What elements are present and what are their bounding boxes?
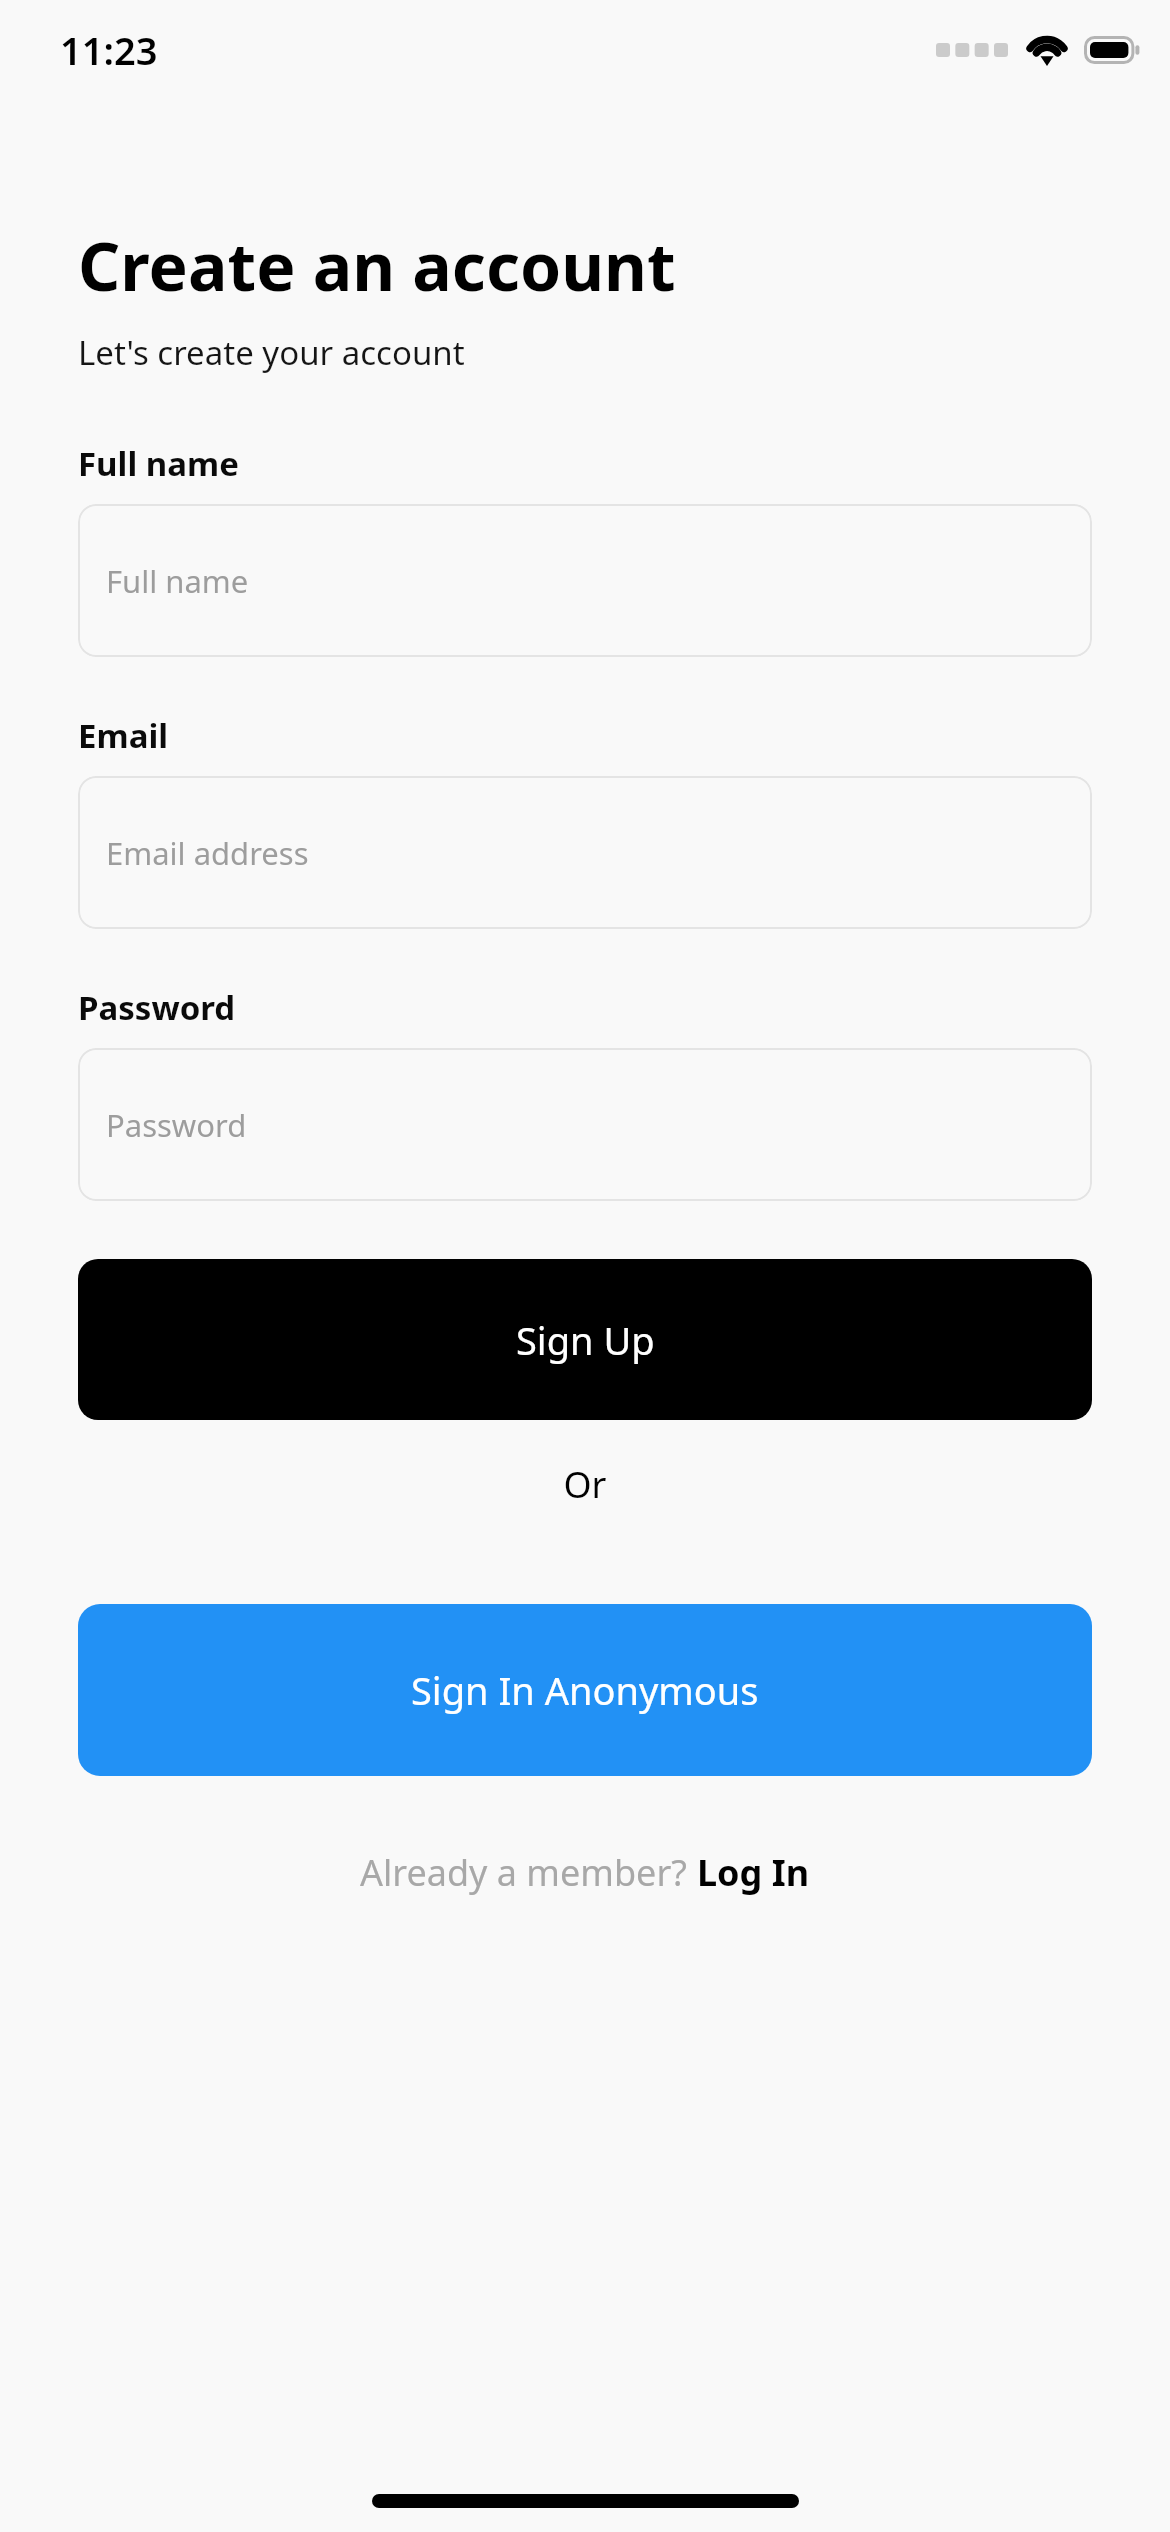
staticText: Sign Up — [516, 1314, 655, 1366]
staticText: Log In — [697, 1848, 810, 1897]
other: Wi-Fi — [1024, 33, 1070, 67]
button[interactable]: Email address — [78, 776, 1092, 929]
staticText: Password — [106, 1104, 247, 1146]
staticText: Email address — [106, 832, 309, 874]
button[interactable]: Password — [78, 1048, 1092, 1201]
staticText: Create an account — [78, 220, 676, 310]
button[interactable]: Full name — [78, 504, 1092, 657]
button[interactable]: Already a member? — [78, 1848, 1092, 1897]
staticText: 11:23 — [60, 24, 158, 76]
staticText: Already a member? — [360, 1848, 697, 1897]
other: Battery — [1084, 36, 1140, 64]
staticText: Password — [78, 985, 236, 1030]
staticText: Let's create your account — [78, 330, 465, 375]
button[interactable]: Sign In Anonymous — [78, 1604, 1092, 1776]
other: Cellular signal — [936, 43, 1008, 57]
staticText: Email — [78, 713, 169, 758]
button[interactable]: Sign Up — [78, 1259, 1092, 1420]
staticText: Full name — [78, 441, 239, 486]
staticText: Sign In Anonymous — [411, 1664, 759, 1716]
staticText: Full name — [106, 560, 249, 602]
staticText: Or — [78, 1460, 1092, 1509]
